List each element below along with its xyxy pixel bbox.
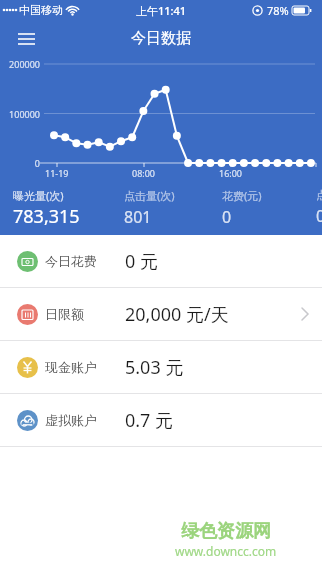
staticText: 16:00	[219, 167, 243, 179]
staticText: 0.7 元	[125, 408, 174, 433]
staticText: 今日花费	[45, 253, 97, 269]
staticText: 801	[124, 206, 152, 228]
button[interactable]: 现金账户	[0, 341, 322, 393]
staticText: 200000	[0, 58, 40, 70]
staticText: 花费(元)	[222, 188, 262, 203]
staticText: 曝光量(次)	[13, 188, 64, 203]
staticText: 11-19	[45, 167, 69, 179]
staticText: 100000	[0, 108, 40, 120]
staticText: 今日数据	[131, 29, 191, 48]
staticText: 0 元	[125, 249, 158, 274]
staticText: 日限额	[45, 306, 84, 322]
staticText: 绿色资源网	[181, 520, 271, 543]
button[interactable]	[12, 25, 40, 53]
staticText: www.downcc.com	[175, 543, 277, 559]
staticText: 上午11:41	[136, 3, 187, 18]
button[interactable]: 今日花费	[0, 235, 322, 287]
button[interactable]: 日限额	[0, 288, 322, 340]
button[interactable]: 虚拟账户	[0, 394, 322, 446]
staticText: 20,000 元/天	[125, 302, 229, 327]
staticText: 0	[0, 157, 40, 169]
staticText: 现金账户	[45, 359, 97, 375]
staticText: 5.03 元	[125, 355, 184, 380]
staticText: 0	[222, 206, 232, 228]
staticText: 78%	[267, 3, 289, 18]
staticText: 点击率	[316, 188, 322, 202]
staticText: 点击量(次)	[124, 188, 175, 203]
staticText: 0	[316, 205, 322, 227]
staticText: 783,315	[13, 204, 80, 229]
staticText: 虚拟账户	[45, 412, 97, 428]
staticText: 08:00	[132, 167, 156, 179]
staticText: 中国移动	[19, 3, 63, 17]
